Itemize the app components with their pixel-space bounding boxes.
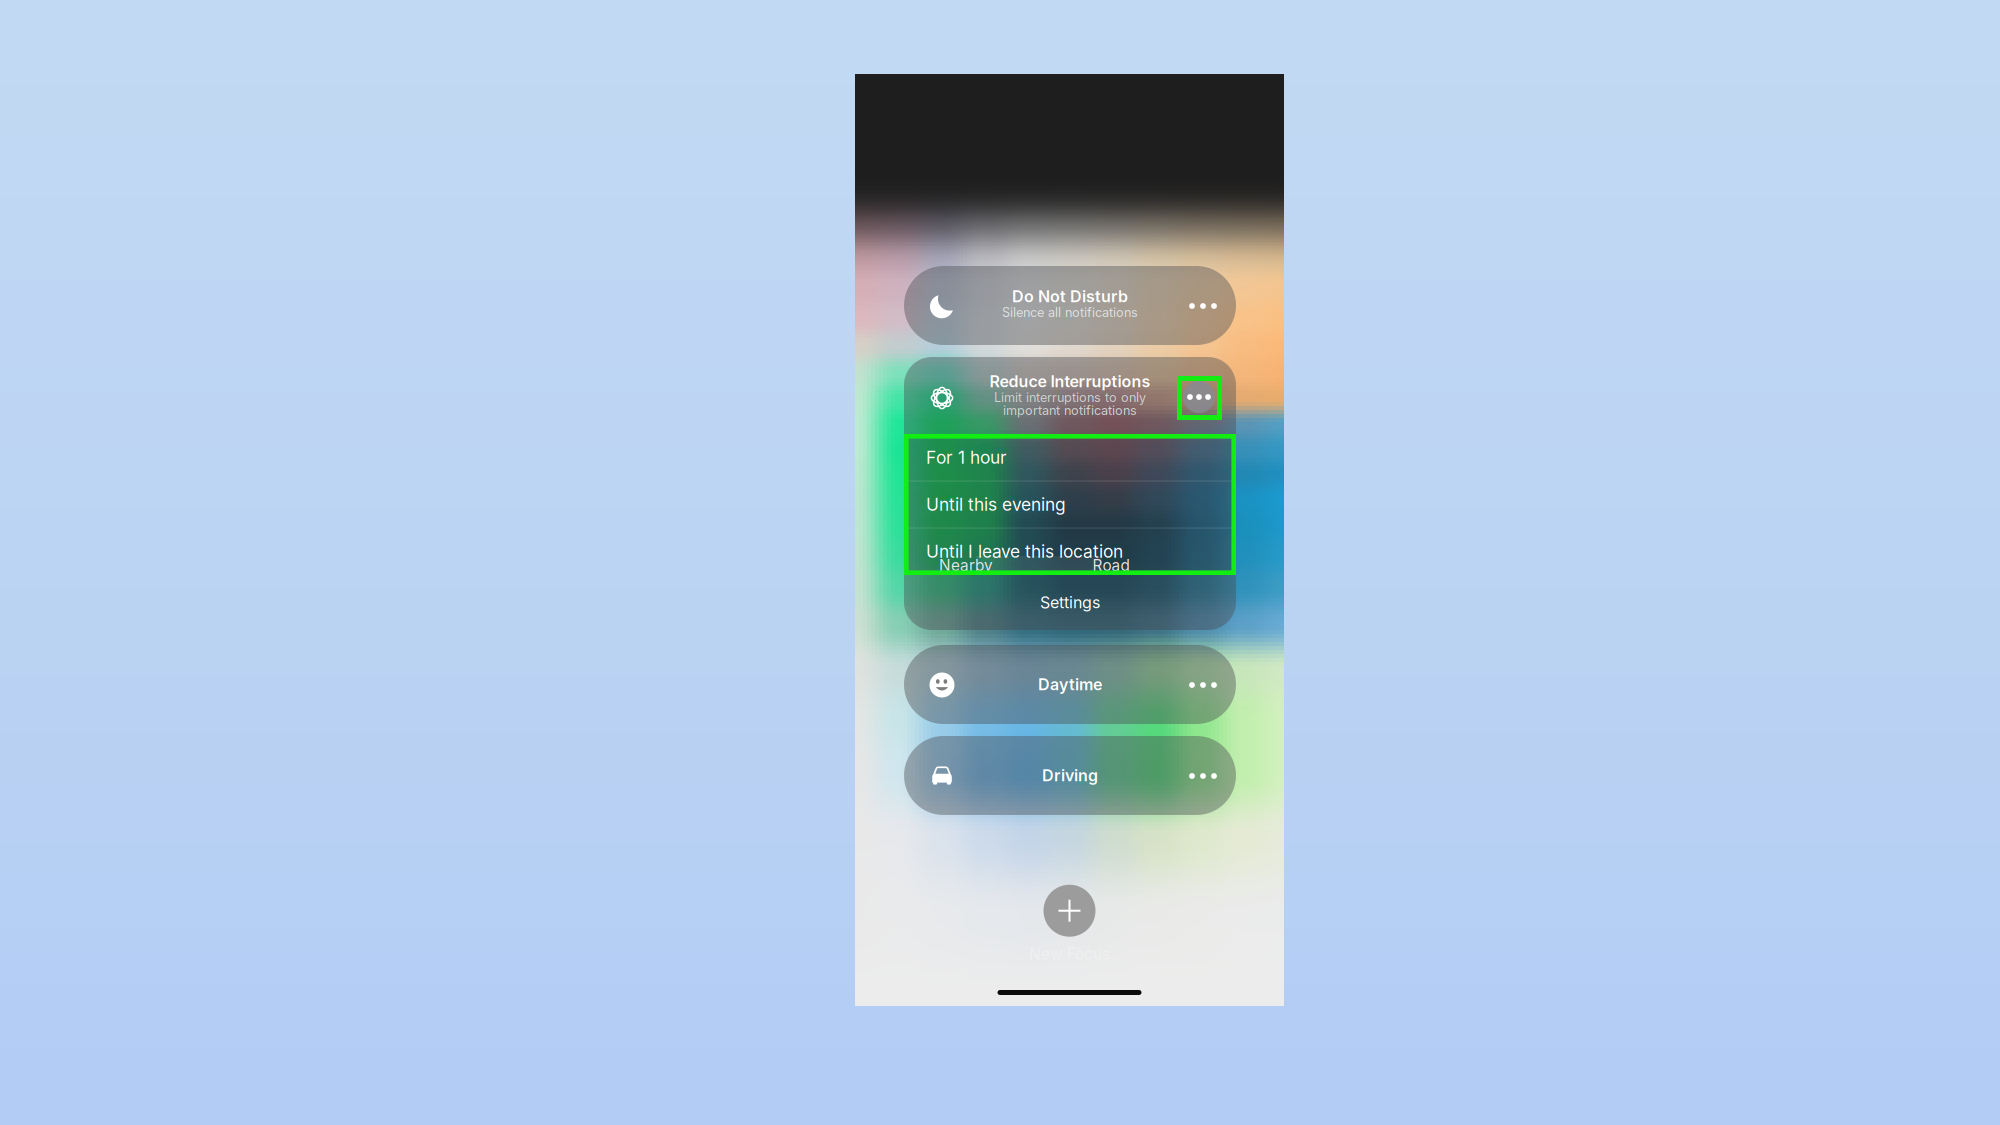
staticText: important notifications	[1003, 403, 1137, 418]
button[interactable]: Daytime	[904, 645, 1236, 724]
button[interactable]: Do Not Disturb	[904, 266, 1236, 345]
staticText: Do Not Disturb	[1012, 287, 1128, 306]
button[interactable]: For 1 hour	[904, 434, 1236, 481]
staticText: For 1 hour	[926, 447, 1007, 468]
button[interactable]: Driving	[904, 736, 1236, 815]
staticText: Until I leave this location	[926, 541, 1123, 562]
staticText: Reduce Interruptions	[989, 372, 1150, 391]
button[interactable]: More options	[1183, 381, 1215, 413]
staticText: Road	[1092, 556, 1129, 575]
staticText: Nearby	[939, 556, 993, 575]
staticText: Until this evening	[926, 494, 1066, 515]
button[interactable]: Settings	[904, 575, 1236, 630]
staticText: Driving	[1042, 766, 1098, 785]
staticText: Limit interruptions to only	[994, 390, 1146, 405]
button[interactable]: Until I leave this location	[904, 528, 1236, 575]
button[interactable]: New Focus	[855, 879, 1284, 969]
staticText: Settings	[1040, 593, 1100, 612]
button[interactable]: Until this evening	[904, 481, 1236, 528]
staticText: Silence all notifications	[1002, 305, 1138, 320]
staticText: Daytime	[1038, 675, 1102, 694]
